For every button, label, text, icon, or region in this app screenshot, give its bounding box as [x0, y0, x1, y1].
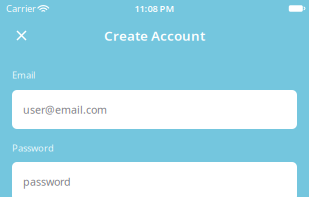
- staticText: 11:08 PM: [134, 2, 174, 15]
- staticText: password: [23, 174, 71, 189]
- button[interactable]: user@email.com: [12, 90, 297, 129]
- staticText: Carrier: [6, 2, 36, 15]
- staticText: user@email.com: [23, 102, 107, 117]
- staticText: Password: [12, 142, 54, 154]
- staticText: Create Account: [104, 27, 205, 44]
- button[interactable]: password: [12, 162, 297, 197]
- staticText: Email: [12, 69, 35, 81]
- button[interactable]: Close: [7, 21, 36, 50]
